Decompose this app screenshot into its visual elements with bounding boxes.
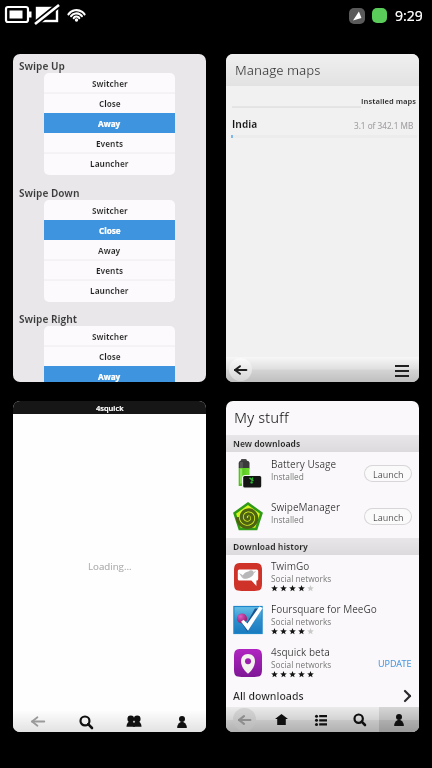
button[interactable]: Menu (394, 362, 410, 378)
button[interactable]: Switcher (44, 326, 175, 346)
staticText: India (232, 117, 258, 131)
button[interactable]: 4squick beta (233, 641, 412, 684)
staticText: Swipe Right (19, 312, 78, 326)
staticText: Launch (373, 468, 404, 480)
button[interactable]: Launch (365, 466, 411, 481)
staticText: 4squick beta (271, 645, 330, 659)
button[interactable]: Switcher (44, 73, 175, 93)
button[interactable]: Launch (365, 509, 411, 524)
staticText: Launch (373, 511, 404, 523)
staticText: SwipeManager (271, 500, 340, 514)
staticText: Launcher (90, 158, 129, 169)
button[interactable]: Away (44, 240, 175, 260)
staticText: Switcher (92, 205, 128, 216)
staticText: Swipe Up (19, 59, 65, 73)
button[interactable]: Manage maps (226, 54, 419, 382)
staticText: Launcher (90, 285, 129, 296)
button[interactable]: Launcher (44, 280, 175, 300)
button[interactable]: Profile (158, 711, 206, 732)
button[interactable]: Friends (110, 711, 158, 732)
staticText: Social networks (271, 573, 332, 584)
button[interactable]: Events (44, 260, 175, 280)
staticText: Close (99, 98, 121, 109)
button[interactable]: Search (62, 711, 110, 732)
button[interactable]: Back (226, 707, 262, 732)
button[interactable]: Battery Usage (233, 452, 412, 495)
button[interactable]: Categories (301, 707, 340, 732)
staticText: Installed maps (361, 96, 416, 106)
staticText: Social networks (271, 659, 332, 670)
staticText: Loading... (88, 560, 132, 573)
button[interactable]: Home (262, 707, 301, 732)
staticText: Manage maps (235, 61, 321, 79)
staticText: Events (96, 138, 124, 149)
button[interactable]: SwipeManager (233, 495, 412, 538)
button[interactable]: Close (44, 93, 175, 113)
button[interactable]: 4squick (13, 401, 206, 732)
staticText: Switcher (92, 331, 128, 342)
button[interactable]: My stuff (226, 401, 419, 732)
staticText: New downloads (233, 438, 301, 450)
staticText: Foursquare for MeeGo (271, 602, 377, 616)
staticText: Close (99, 225, 121, 236)
button[interactable]: Close (44, 346, 175, 366)
button[interactable]: Search (340, 707, 379, 732)
button[interactable]: Swipe Up (13, 54, 206, 382)
button[interactable]: Close (44, 220, 175, 240)
staticText: Switcher (92, 78, 128, 89)
staticText: Events (96, 265, 124, 276)
staticText: Installed (271, 514, 304, 525)
staticText: Download history (233, 541, 308, 553)
staticText: Away (98, 245, 121, 256)
button[interactable]: Back (13, 711, 62, 732)
staticText: Installed (271, 471, 304, 482)
button[interactable]: Away (44, 113, 175, 133)
button[interactable]: Foursquare for MeeGo (233, 598, 412, 641)
staticText: My stuff (234, 408, 289, 428)
button[interactable]: UPDATE (378, 657, 412, 669)
staticText: Social networks (271, 616, 332, 627)
button[interactable]: Profile (379, 707, 419, 732)
staticText: TwimGo (271, 559, 310, 573)
button[interactable]: Launcher (44, 153, 175, 173)
staticText: UPDATE (378, 657, 412, 669)
button[interactable]: Back (229, 358, 252, 381)
button[interactable]: Away (44, 366, 175, 382)
staticText: 4squick (96, 403, 124, 413)
staticText: 3.1 of 342.1 MB (354, 120, 414, 131)
staticText: Battery Usage (271, 457, 337, 471)
staticText: Swipe Down (19, 186, 80, 200)
staticText: Close (99, 351, 121, 362)
staticText: All downloads (233, 689, 304, 703)
button[interactable]: Events (44, 133, 175, 153)
staticText: Away (98, 118, 121, 129)
staticText: Away (98, 371, 121, 382)
button[interactable]: TwimGo (233, 555, 412, 598)
button[interactable]: All downloads (233, 684, 411, 707)
staticText: 9:29 (395, 6, 423, 25)
button[interactable]: Switcher (44, 200, 175, 220)
